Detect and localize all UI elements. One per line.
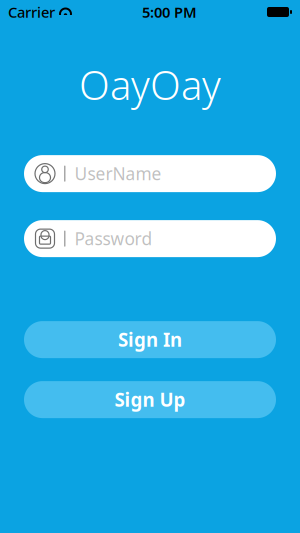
button[interactable]: Sign Up — [24, 381, 276, 418]
staticText: Password — [74, 227, 152, 250]
staticText: Sign Up — [114, 387, 185, 412]
staticText: Carrier — [8, 2, 55, 22]
staticText: 5:00 PM — [142, 2, 197, 22]
staticText: OayOay — [79, 58, 221, 111]
staticText: Sign In — [118, 327, 182, 352]
button[interactable]: UserName — [24, 155, 276, 192]
button[interactable]: Sign In — [24, 321, 276, 358]
staticText: UserName — [74, 162, 161, 185]
button[interactable]: Password — [24, 220, 276, 257]
